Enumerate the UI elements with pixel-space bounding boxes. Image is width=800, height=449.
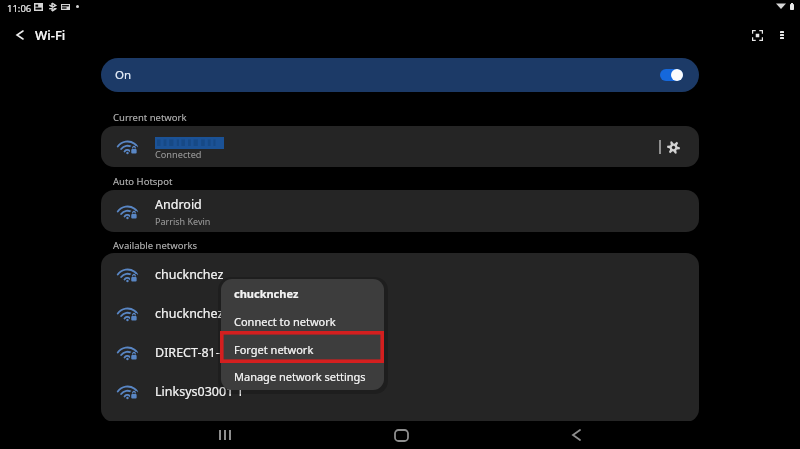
staticText: Parrish Kevin: [155, 215, 211, 227]
button[interactable]: Wi-Fi: [5, 22, 66, 48]
button[interactable]: More options: [770, 23, 794, 47]
button[interactable]: Connect to network: [221, 307, 384, 335]
staticText: chucknchez: [234, 286, 299, 301]
staticText: Auto Hotspot: [113, 175, 173, 188]
staticText: Available networks: [113, 239, 197, 252]
staticText: Forget network: [234, 342, 314, 357]
staticText: Linksys03001 1: [155, 383, 244, 400]
staticText: chucknchez: [155, 305, 224, 322]
button[interactable]: DIRECT-81-HP OfficeJet 4650: [101, 333, 699, 372]
staticText: 11:06: [7, 2, 32, 15]
button[interactable]: Recents: [213, 421, 237, 449]
staticText: Android: [155, 196, 202, 213]
staticText: On: [115, 67, 132, 83]
button[interactable]: Connected: [101, 126, 699, 167]
staticText: chucknchez: [155, 266, 224, 283]
button[interactable]: Back: [564, 421, 588, 449]
button[interactable]: Scan QR code: [745, 23, 769, 47]
button[interactable]: Linksys03001 1: [101, 372, 699, 411]
staticText: DIRECT-81-HP OfficeJet 4650: [155, 344, 322, 361]
staticText: Manage network settings: [234, 369, 366, 384]
button[interactable]: Forget network: [221, 335, 384, 363]
button[interactable]: chucknchez: [101, 255, 699, 294]
button[interactable]: Home: [389, 421, 413, 449]
button[interactable]: chucknchez: [101, 294, 699, 333]
staticText: Connect to network: [234, 314, 336, 329]
button[interactable]: Manage network settings: [221, 363, 384, 390]
staticText: Wi-Fi: [35, 26, 66, 44]
button[interactable]: chucknchez: [221, 279, 384, 307]
staticText: Current network: [113, 111, 187, 124]
button[interactable]: Android: [101, 190, 699, 232]
staticText: Connected: [155, 148, 202, 161]
button[interactable]: Network settings: [663, 137, 683, 157]
button[interactable]: On: [101, 58, 699, 92]
